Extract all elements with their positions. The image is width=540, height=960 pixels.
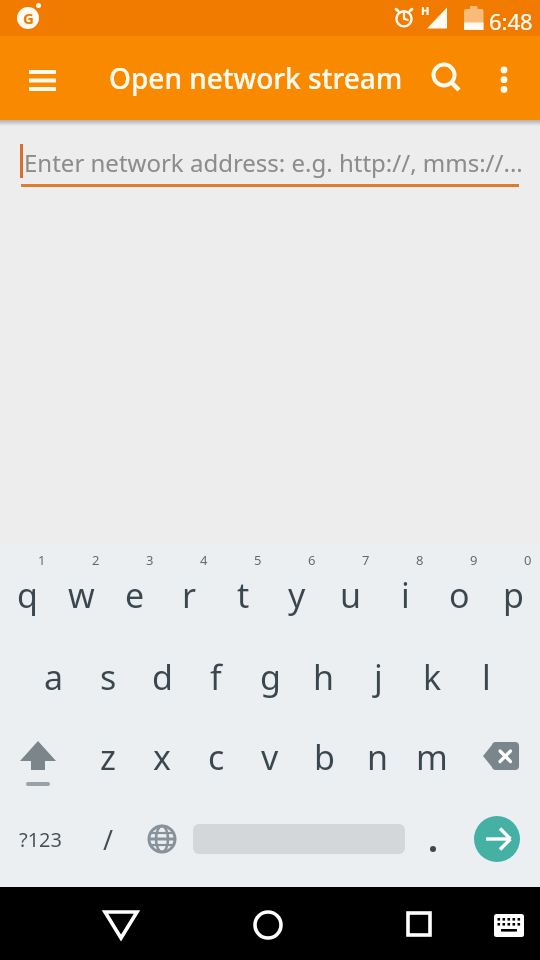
staticText: p [503, 572, 524, 618]
staticText: q [17, 572, 38, 618]
button[interactable]: / [81, 791, 135, 887]
staticText: a [44, 654, 64, 700]
staticText: 9 [470, 551, 478, 569]
staticText: l [482, 654, 491, 700]
staticText: u [340, 572, 362, 618]
button[interactable]: q [0, 545, 54, 627]
staticText: H [421, 3, 430, 18]
button[interactable]: r [162, 545, 216, 627]
staticText: 7 [362, 551, 370, 569]
button[interactable] [459, 791, 540, 887]
button[interactable]: h [297, 627, 351, 709]
staticText: s [100, 654, 117, 700]
button[interactable] [421, 52, 469, 100]
button[interactable]: i [378, 545, 432, 627]
button[interactable]: j [351, 627, 405, 709]
staticText: o [449, 572, 470, 618]
button[interactable]: o [432, 545, 486, 627]
button[interactable]: d [135, 627, 189, 709]
staticText: d [152, 654, 173, 700]
staticText: ?123 [19, 826, 62, 853]
button[interactable]: m [405, 709, 459, 791]
staticText: y [288, 572, 306, 618]
button[interactable]: z [81, 709, 135, 791]
button[interactable]: y [270, 545, 324, 627]
button[interactable] [395, 899, 443, 947]
staticText: i [401, 572, 410, 618]
staticText: w [68, 572, 95, 618]
button[interactable]: x [135, 709, 189, 791]
button[interactable]: f [189, 627, 243, 709]
button[interactable]: k [405, 627, 459, 709]
staticText: r [182, 572, 197, 618]
button[interactable]: c [189, 709, 243, 791]
staticText: n [367, 734, 389, 780]
staticText: 6:48 [489, 6, 533, 36]
button[interactable] [97, 899, 145, 947]
staticText: b [314, 734, 335, 780]
button[interactable]: g [243, 627, 297, 709]
button[interactable] [485, 899, 533, 947]
staticText: m [416, 734, 448, 780]
button[interactable]: p [486, 545, 540, 627]
staticText: f [210, 654, 222, 700]
button[interactable]: Enter network address: e.g. http://, mms… [24, 146, 523, 179]
button[interactable] [480, 52, 528, 100]
staticText: 5 [254, 551, 262, 569]
staticText: z [100, 734, 116, 780]
staticText: v [261, 734, 279, 780]
button[interactable]: b [297, 709, 351, 791]
button[interactable] [0, 709, 81, 791]
button[interactable]: l [459, 627, 513, 709]
staticText: k [423, 654, 442, 700]
button[interactable] [244, 899, 292, 947]
staticText: 0 [524, 551, 532, 569]
staticText: g [260, 654, 281, 700]
staticText: 4 [200, 551, 208, 569]
button[interactable]: u [324, 545, 378, 627]
staticText: 3 [146, 551, 154, 569]
button[interactable]: t [216, 545, 270, 627]
button[interactable] [189, 791, 405, 887]
staticText: / [103, 821, 114, 858]
staticText: j [374, 654, 383, 700]
staticText: x [153, 734, 171, 780]
button[interactable] [405, 791, 459, 887]
button[interactable]: a [27, 627, 81, 709]
staticText: G [23, 8, 34, 28]
staticText: 1 [38, 551, 46, 569]
staticText: 6 [308, 551, 316, 569]
staticText: 8 [416, 551, 424, 569]
staticText: e [125, 572, 145, 618]
staticText: 2 [92, 551, 100, 569]
button[interactable]: v [243, 709, 297, 791]
staticText: t [237, 572, 250, 618]
staticText: c [208, 734, 225, 780]
button[interactable] [135, 791, 189, 887]
button[interactable] [16, 51, 66, 101]
button[interactable]: e [108, 545, 162, 627]
staticText: h [313, 654, 335, 700]
button[interactable]: s [81, 627, 135, 709]
button[interactable] [459, 709, 540, 791]
button[interactable]: ?123 [0, 791, 81, 887]
button[interactable]: n [351, 709, 405, 791]
button[interactable]: w [54, 545, 108, 627]
staticText: Open network stream [109, 59, 403, 97]
